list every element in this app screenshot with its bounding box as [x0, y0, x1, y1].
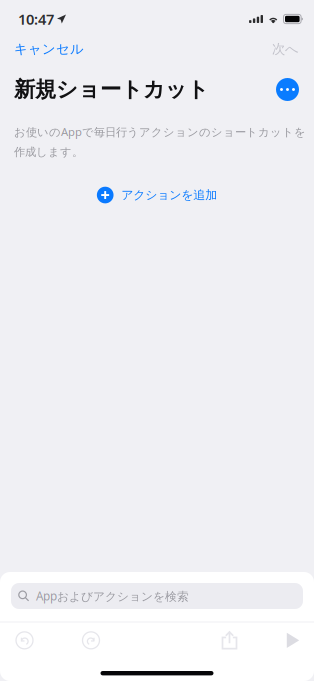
button[interactable]: キャンセル: [0, 38, 98, 60]
staticText: キャンセル: [14, 41, 84, 57]
staticText: Appおよびアクションを検索: [36, 588, 189, 604]
button[interactable]: More options: [274, 76, 301, 103]
button[interactable]: Share: [187, 622, 272, 658]
staticText: 次へ: [272, 41, 299, 57]
staticText: アクションを追加: [121, 188, 217, 202]
staticText: 10:47: [18, 9, 54, 29]
button[interactable]: Redo: [49, 622, 133, 658]
button[interactable]: Appおよびアクションを検索: [11, 583, 303, 609]
staticText: 新規ショートカット: [14, 76, 209, 103]
staticText: お使いのAppで毎日行うアクションのショートカットを: [14, 124, 306, 139]
button[interactable]: Undo: [0, 622, 49, 658]
button[interactable]: 次へ: [257, 38, 314, 60]
button[interactable]: アクションを追加: [89, 184, 225, 206]
staticText: 作成します。: [14, 145, 83, 159]
button[interactable]: Run shortcut: [272, 622, 314, 658]
